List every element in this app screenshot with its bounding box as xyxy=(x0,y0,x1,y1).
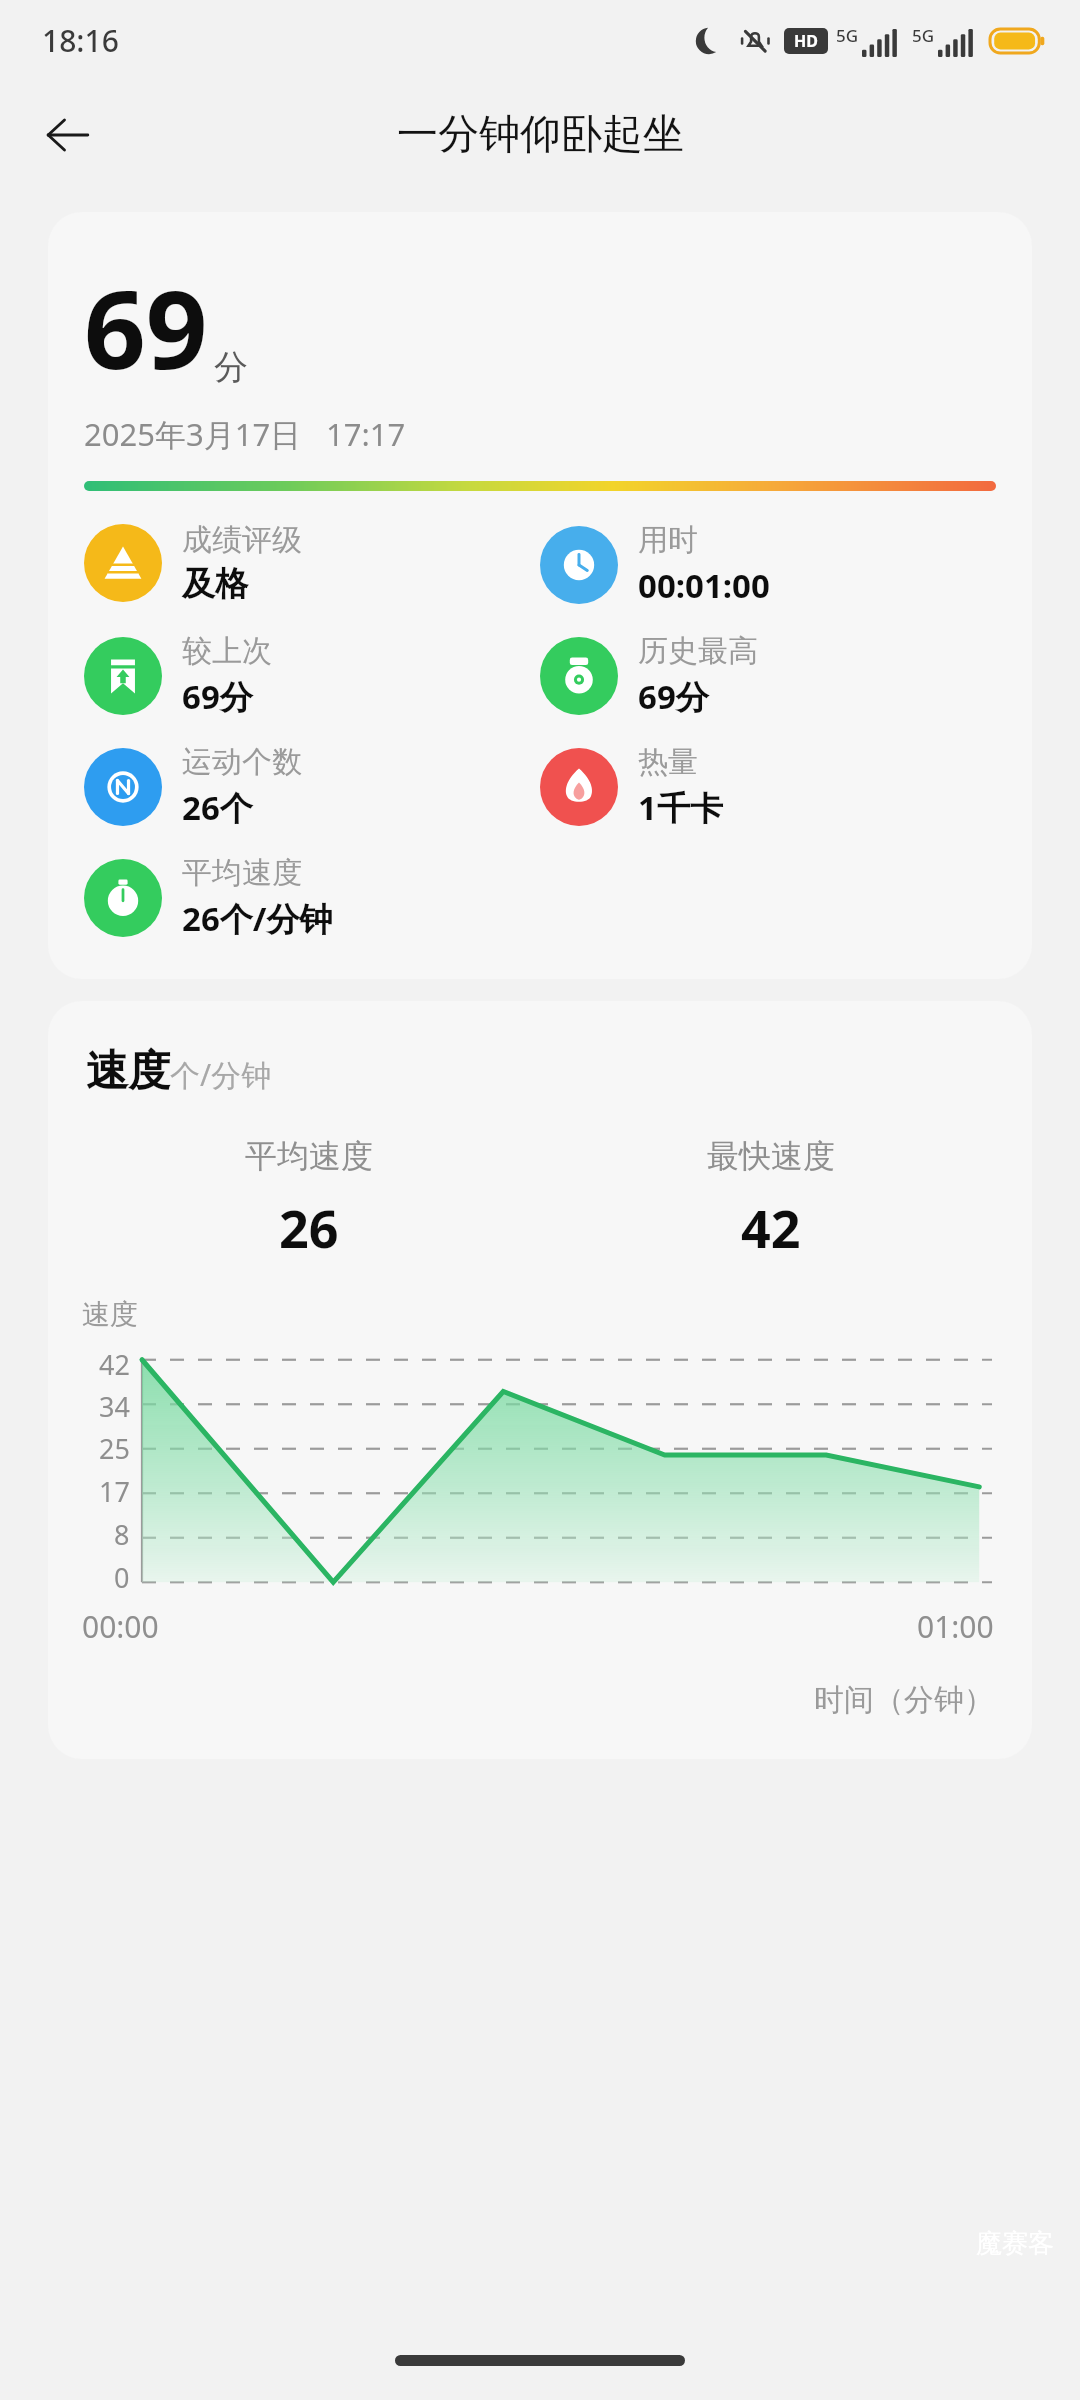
staticText: 26个/分钟 xyxy=(182,896,333,941)
button[interactable]: 成绩评级 xyxy=(84,521,540,605)
staticText: 速度 xyxy=(86,1045,170,1098)
button[interactable]: Back xyxy=(30,97,106,173)
button[interactable]: 用时 xyxy=(540,521,996,608)
button[interactable]: 热量 xyxy=(540,743,996,830)
button[interactable]: 平均速度 xyxy=(84,854,540,941)
button[interactable]: 运动个数 xyxy=(84,743,540,830)
staticText: 42 xyxy=(99,1346,130,1383)
staticText: HD xyxy=(794,30,818,52)
staticText: 69分 xyxy=(638,674,709,719)
staticText: 较上次 xyxy=(182,632,272,670)
staticText: 5G xyxy=(836,24,859,47)
staticText: 历史最高 xyxy=(638,632,758,670)
staticText: 8 xyxy=(114,1516,130,1553)
staticText: 0 xyxy=(114,1559,130,1596)
staticText: 时间（分钟） xyxy=(78,1681,994,1719)
staticText: 18:16 xyxy=(42,20,119,61)
staticText: 速度 xyxy=(82,1297,138,1332)
staticText: 00:01:00 xyxy=(638,563,770,608)
staticText: 2025年3月17日 xyxy=(84,413,302,455)
staticText: 最快速度 xyxy=(707,1136,835,1176)
staticText: 一分钟仰卧起坐 xyxy=(397,109,684,161)
staticText: 25 xyxy=(99,1430,130,1467)
staticText: 34 xyxy=(99,1388,130,1425)
staticText: 平均速度 xyxy=(182,854,302,892)
staticText: 平均速度 xyxy=(245,1136,373,1176)
staticText: 5G xyxy=(912,24,935,47)
staticText: 26个 xyxy=(182,785,253,830)
staticText: 分 xyxy=(214,346,248,389)
button[interactable]: 较上次 xyxy=(84,632,540,719)
staticText: 1千卡 xyxy=(638,785,723,830)
staticText: 17:17 xyxy=(326,413,406,455)
staticText: 17 xyxy=(99,1473,130,1510)
staticText: 热量 xyxy=(638,743,698,781)
staticText: 42 xyxy=(741,1192,801,1263)
staticText: 69分 xyxy=(182,674,253,719)
staticText: 运动个数 xyxy=(182,743,302,781)
staticText: 成绩评级 xyxy=(182,521,302,559)
staticText: 00:00 xyxy=(82,1606,159,1647)
staticText: 个/分钟 xyxy=(170,1054,272,1095)
staticText: 用时 xyxy=(638,521,698,559)
staticText: 魔赛客 xyxy=(976,2227,1054,2260)
button[interactable]: 历史最高 xyxy=(540,632,996,719)
staticText: 及格 xyxy=(182,563,248,605)
staticText: 26 xyxy=(279,1192,339,1263)
staticText: 69 xyxy=(84,254,208,401)
staticText: 01:00 xyxy=(917,1606,994,1647)
